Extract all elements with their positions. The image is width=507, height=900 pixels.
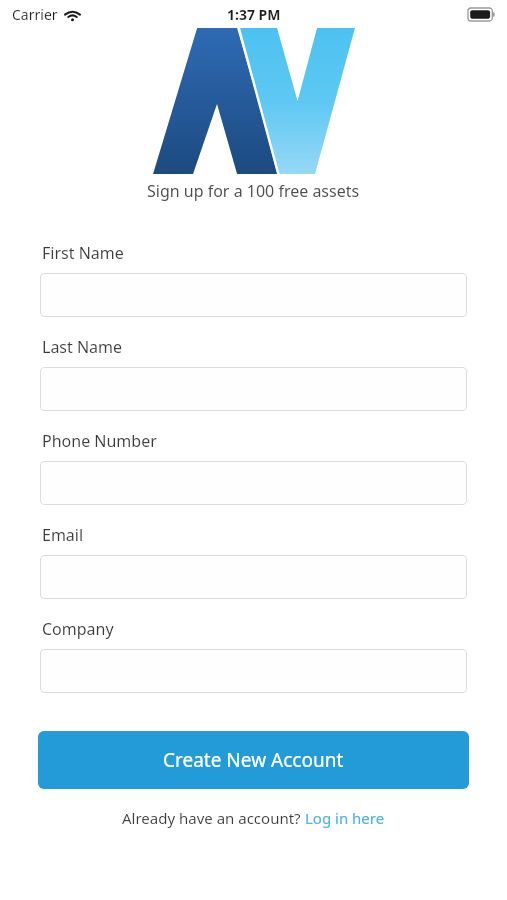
button[interactable]: Create New Account — [38, 731, 469, 789]
button[interactable]: First Name — [40, 273, 467, 317]
staticText: Carrier — [12, 5, 58, 24]
staticText: Already have an account? — [122, 808, 305, 828]
staticText: Log in here — [305, 808, 385, 828]
staticText: Company — [42, 618, 114, 640]
button[interactable]: Company — [40, 649, 467, 693]
staticText: First Name — [42, 242, 124, 264]
button[interactable]: Log in here — [305, 806, 385, 830]
staticText: Create New Account — [163, 747, 344, 773]
staticText: Sign up for a 100 free assets — [147, 180, 360, 202]
button[interactable]: Phone Number — [40, 461, 467, 505]
button[interactable]: Last Name — [40, 367, 467, 411]
staticText: 1:37 PM — [227, 5, 281, 24]
staticText: Last Name — [42, 336, 123, 358]
staticText: Phone Number — [42, 430, 157, 452]
staticText: Email — [42, 524, 84, 546]
button[interactable]: Email — [40, 555, 467, 599]
